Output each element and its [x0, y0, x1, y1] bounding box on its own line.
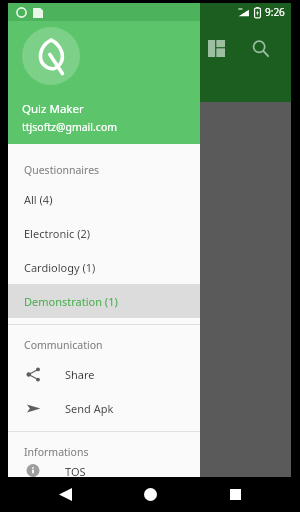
button[interactable]: All (4): [8, 182, 200, 216]
button[interactable]: Demonstration (1): [8, 284, 200, 318]
button[interactable]: Share: [8, 357, 200, 391]
staticText: ttjsoftz@gmail.com: [22, 120, 118, 134]
button[interactable]: Search: [243, 31, 277, 65]
staticText: Questionnaires: [24, 163, 100, 177]
button[interactable]: Back: [45, 477, 85, 512]
button[interactable]: Home: [130, 477, 170, 512]
button[interactable]: Electronic (2): [8, 216, 200, 250]
button[interactable]: Send Apk: [8, 391, 200, 425]
button[interactable]: Dashboard: [199, 31, 233, 65]
button[interactable]: TOS: [8, 464, 200, 477]
button[interactable]: Recents: [215, 477, 255, 512]
staticText: TOS: [65, 464, 86, 477]
staticText: Informations: [24, 445, 89, 459]
staticText: Share: [65, 367, 95, 382]
staticText: ALLABLES: [9, 73, 61, 88]
staticText: All (4): [24, 192, 53, 207]
button[interactable]: Profile: [22, 27, 80, 85]
staticText: Electronic (2): [24, 226, 91, 241]
staticText: Demonstration (1): [24, 294, 118, 309]
staticText: Cardiology (1): [24, 260, 96, 275]
staticText: 9:26: [265, 5, 285, 19]
staticText: Send Apk: [65, 401, 114, 416]
staticText: Quiz Maker: [22, 101, 84, 117]
staticText: Communication: [24, 338, 103, 352]
button[interactable]: Cardiology (1): [8, 250, 200, 284]
